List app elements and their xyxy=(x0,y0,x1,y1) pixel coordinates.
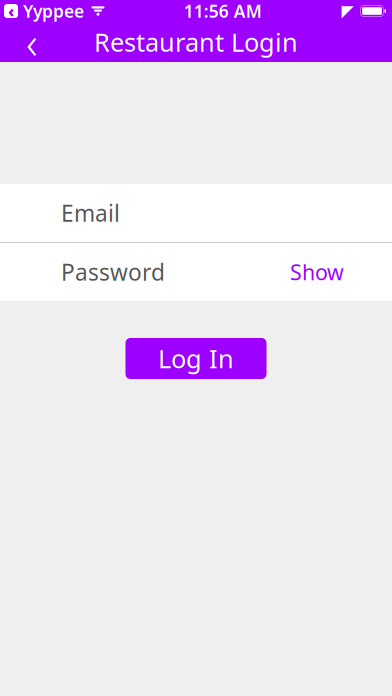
staticText: ‹ xyxy=(8,0,14,22)
staticText: ‹ xyxy=(26,13,38,71)
staticText: Email xyxy=(61,198,120,228)
staticText: Yyppee xyxy=(23,0,84,22)
staticText: 11:56 AM xyxy=(184,0,262,22)
button[interactable]: Email xyxy=(0,184,392,242)
staticText: Password xyxy=(61,257,165,287)
staticText: Show xyxy=(290,258,344,286)
staticText: Log In xyxy=(158,342,234,375)
staticText: ◤ xyxy=(341,2,353,20)
staticText: Restaurant Login xyxy=(94,25,298,59)
button[interactable]: Back xyxy=(12,22,52,62)
button[interactable]: Log In xyxy=(125,338,266,379)
button[interactable]: Show xyxy=(286,250,348,294)
